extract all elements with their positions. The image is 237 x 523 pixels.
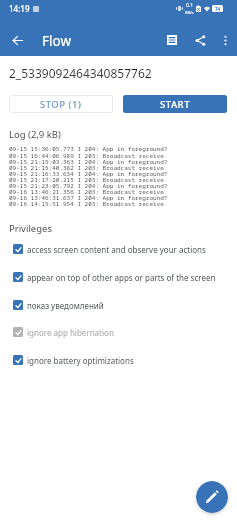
- staticText: KB/s: [185, 10, 194, 15]
- staticText: ignore app hibernation: [27, 327, 114, 338]
- staticText: 09-15 15:36:05.773 I 204: App in foregro…: [9, 145, 168, 207]
- staticText: access screen content and observe your a…: [27, 244, 206, 255]
- button[interactable]: ignore app hibernation: [0, 319, 237, 345]
- button[interactable]: STOP (1): [9, 95, 113, 113]
- staticText: ignore battery optimizations: [27, 355, 134, 366]
- staticText: Flow: [42, 32, 71, 50]
- staticText: Privileges: [9, 222, 52, 235]
- button[interactable]: Share: [186, 26, 214, 54]
- staticText: START: [160, 98, 190, 111]
- staticText: 0.1: [186, 2, 194, 9]
- button[interactable]: Log: [158, 26, 186, 54]
- button[interactable]: показ уведомлений: [0, 292, 237, 318]
- staticText: 2_5339092464340857762: [9, 65, 152, 81]
- button[interactable]: Back: [3, 26, 31, 54]
- button[interactable]: appear on top of other apps or parts of …: [0, 264, 237, 290]
- staticText: appear on top of other apps or parts of …: [27, 272, 216, 283]
- button[interactable]: START: [123, 95, 227, 113]
- button[interactable]: access screen content and observe your a…: [0, 236, 237, 262]
- staticText: показ уведомлений: [27, 300, 104, 311]
- button[interactable]: ignore battery optimizations: [0, 347, 237, 373]
- staticText: Log (2,9 kB): [9, 128, 61, 141]
- staticText: 74: [215, 6, 221, 12]
- button[interactable]: More options: [211, 26, 237, 54]
- staticText: STOP (1): [40, 98, 82, 111]
- button[interactable]: Edit: [196, 481, 228, 513]
- staticText: 14:19: [9, 3, 30, 14]
